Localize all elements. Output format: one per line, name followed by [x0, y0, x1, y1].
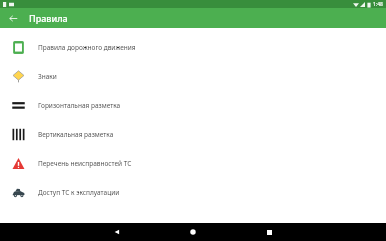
staticText: Горизонтальная разметка	[38, 101, 121, 110]
button[interactable]: Back	[5, 10, 21, 26]
button[interactable]: Recents	[262, 225, 276, 239]
button[interactable]: Перечень неисправностей ТС	[0, 149, 386, 178]
staticText: 1:48	[373, 1, 383, 8]
staticText: Доступ ТС к эксплуатации	[38, 188, 120, 197]
button[interactable]: Доступ ТС к эксплуатации	[0, 178, 386, 207]
staticText: Правила дорожного движения	[38, 43, 136, 52]
staticText: Вертикальная разметка	[38, 130, 114, 139]
button[interactable]: Горизонтальная разметка	[0, 91, 386, 120]
button[interactable]: Back	[110, 225, 124, 239]
button[interactable]: Home	[186, 225, 200, 239]
staticText: Правила	[29, 12, 68, 24]
staticText: Знаки	[38, 72, 57, 81]
button[interactable]: Правила дорожного движения	[0, 33, 386, 62]
button[interactable]: Знаки	[0, 62, 386, 91]
staticText: Перечень неисправностей ТС	[38, 159, 132, 168]
button[interactable]: Вертикальная разметка	[0, 120, 386, 149]
